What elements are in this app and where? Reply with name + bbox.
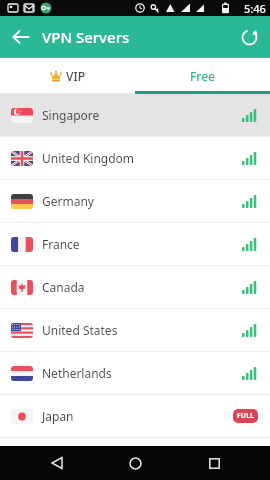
button[interactable]: Netherlands — [0, 352, 270, 394]
button[interactable]: Canada — [0, 266, 270, 308]
staticText: 5:46 — [244, 1, 266, 16]
button[interactable]: Singapore — [0, 94, 270, 136]
button[interactable] — [0, 16, 42, 58]
button[interactable]: Germany — [0, 180, 270, 222]
staticText: VIP — [66, 68, 85, 84]
staticText: United States — [42, 322, 118, 338]
button[interactable]: France — [0, 223, 270, 265]
button[interactable]: Free — [135, 58, 270, 94]
button[interactable]: Japan — [0, 395, 270, 437]
button[interactable] — [228, 16, 270, 58]
button[interactable] — [35, 446, 79, 480]
staticText: VPN Servers — [42, 27, 130, 47]
staticText: Singapore — [42, 107, 100, 123]
staticText: Netherlands — [42, 365, 112, 381]
staticText: United Kingdom — [42, 150, 135, 166]
staticText: Canada — [42, 279, 85, 295]
staticText: Japan — [42, 408, 74, 424]
button[interactable] — [113, 446, 157, 480]
button[interactable]: VIP — [0, 58, 135, 94]
staticText: FULL — [237, 411, 254, 421]
staticText: Free — [190, 68, 215, 84]
staticText: Germany — [42, 193, 94, 209]
staticText: France — [42, 236, 80, 252]
button[interactable]: United Kingdom — [0, 137, 270, 179]
button[interactable] — [192, 446, 236, 480]
button[interactable]: United States — [0, 309, 270, 351]
